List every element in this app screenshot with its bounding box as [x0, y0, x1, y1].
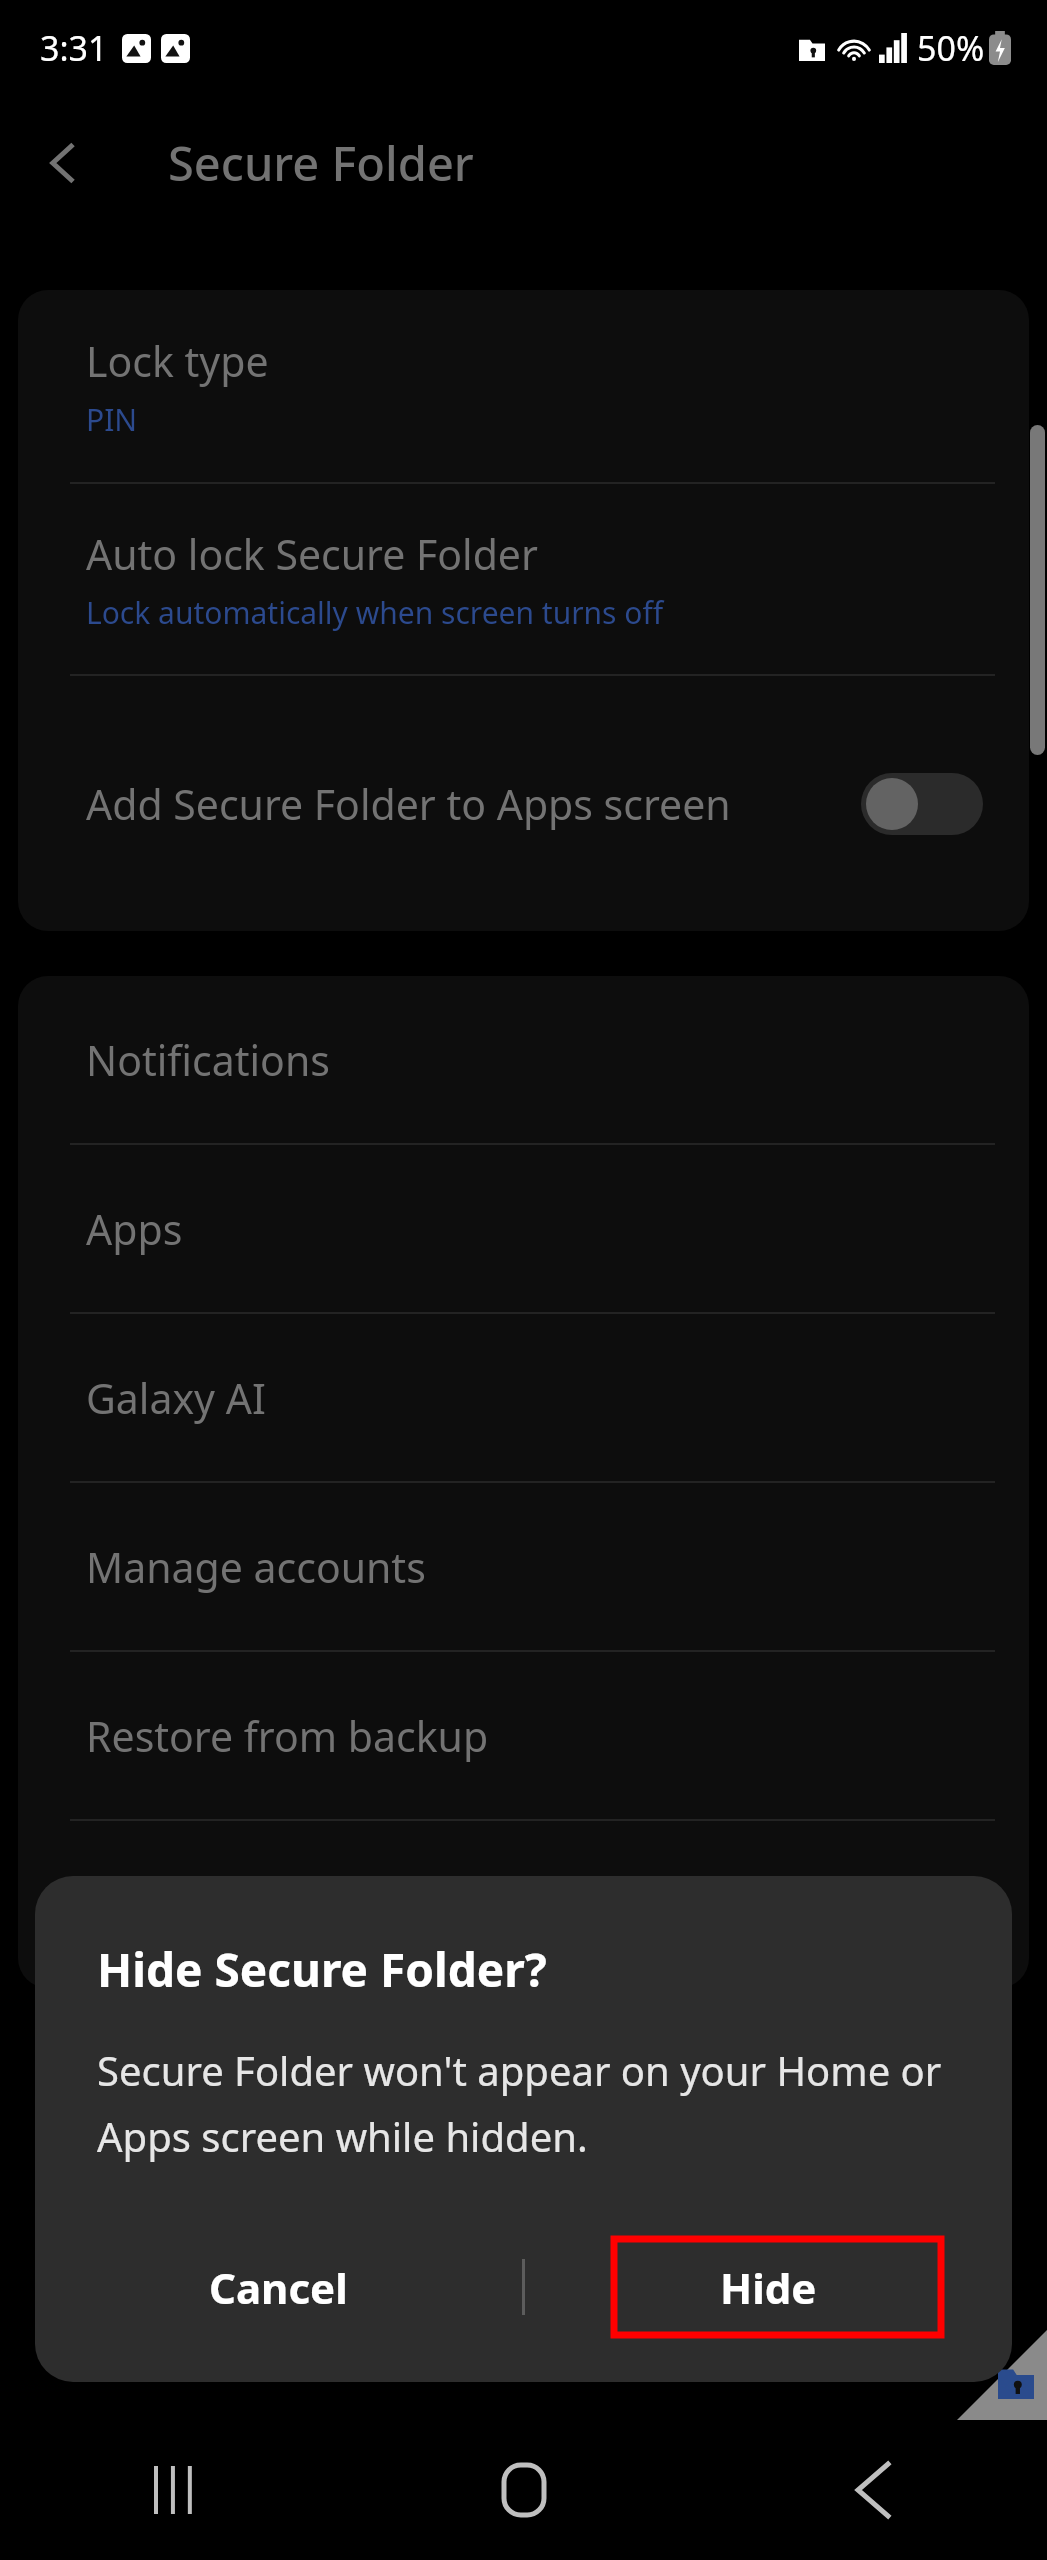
staticText: Notifications — [86, 1032, 330, 1088]
staticText: Lock type — [86, 333, 269, 389]
staticText: Hide — [720, 2259, 817, 2316]
button[interactable]: Navigate up — [24, 123, 104, 203]
staticText: PIN — [86, 399, 138, 440]
staticText: Apps — [86, 1201, 183, 1257]
button[interactable]: Add Secure Folder to Apps screen — [18, 676, 1029, 931]
staticText: Cancel — [209, 2259, 348, 2316]
staticText: Restore from backup — [86, 1708, 489, 1764]
staticText: 3:31 — [40, 25, 108, 71]
button[interactable]: Auto lock Secure Folder — [18, 484, 1029, 674]
button[interactable]: Hide — [525, 2212, 1012, 2362]
staticText: Add Secure Folder to Apps screen — [86, 776, 841, 832]
button[interactable]: Apps — [18, 1145, 1029, 1312]
button[interactable]: Restore from backup — [18, 1652, 1029, 1819]
button[interactable]: Security policy — [18, 1821, 1029, 1988]
button[interactable]: Notifications — [18, 976, 1029, 1143]
button[interactable]: Cancel — [35, 2212, 522, 2362]
staticText: Hide Secure Folder? — [97, 1938, 547, 2001]
button[interactable]: Lock type — [18, 290, 1029, 482]
button[interactable]: Back — [698, 2420, 1047, 2560]
button[interactable]: Home — [349, 2420, 698, 2560]
staticText: Secure Folder won't appear on your Home … — [97, 2043, 952, 2164]
button[interactable]: Galaxy AI — [18, 1314, 1029, 1481]
staticText: Manage accounts — [86, 1539, 426, 1595]
button[interactable]: Manage accounts — [18, 1483, 1029, 1650]
staticText: Galaxy AI — [86, 1370, 266, 1426]
staticText: 50% — [917, 25, 985, 71]
staticText: Secure Folder — [168, 131, 474, 195]
button[interactable]: Recents — [0, 2420, 349, 2560]
staticText: Lock automatically when screen turns off — [86, 592, 664, 633]
staticText: Auto lock Secure Folder — [86, 526, 538, 582]
